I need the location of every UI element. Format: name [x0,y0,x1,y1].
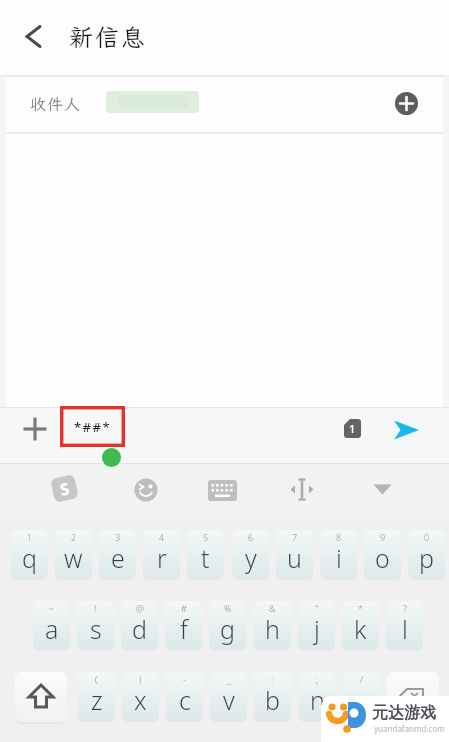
staticText: p [419,541,434,575]
button[interactable] [208,480,237,502]
staticText: 1 [349,421,356,436]
staticText: 1 [27,531,33,543]
staticText: 2 [71,531,77,543]
staticText: 新信息 [69,21,147,53]
button[interactable] [370,482,395,498]
staticText: : [271,673,274,685]
staticText: ) [139,673,142,685]
staticText: @ [136,602,144,614]
staticText: 8 [336,531,342,543]
staticText: * [358,602,363,614]
staticText: k [354,612,367,646]
staticText: 收件人 [30,93,82,114]
staticText: z [91,683,103,717]
staticText: ( [95,673,98,685]
staticText: 元达游戏 [372,703,436,723]
staticText: & [269,602,276,614]
button[interactable]: / [343,672,380,720]
button[interactable]: * [342,601,379,649]
button[interactable] [132,476,160,504]
button[interactable]: 6 [232,530,269,578]
staticText: o [375,541,390,575]
button[interactable]: 2 [55,530,92,578]
staticText: b [265,683,280,717]
staticText: r [157,541,167,575]
staticText: 4 [159,531,165,543]
button[interactable]: 3 [99,530,136,578]
staticText: *##* [74,418,112,436]
button[interactable]: - [166,672,203,720]
button[interactable] [18,18,54,56]
staticText: v [223,683,235,717]
button[interactable] [15,672,67,722]
button[interactable]: 1 [11,530,48,578]
button[interactable] [0,76,449,132]
button[interactable]: @ [121,601,158,649]
staticText: S [58,477,71,501]
button[interactable]: 5 [187,530,224,578]
staticText: ~ [49,602,55,614]
button[interactable]: : [254,672,291,720]
staticText: y [245,541,257,575]
button[interactable] [288,477,316,503]
staticText: i [336,541,342,575]
staticText: q [22,541,37,575]
staticText: u [287,541,302,575]
staticText: ? [403,602,407,614]
staticText: s [90,612,102,646]
staticText: w [64,541,83,575]
staticText: 7 [292,531,298,543]
staticText: x [134,683,147,717]
staticText: - [183,673,186,685]
staticText: l [402,612,408,646]
staticText: c [179,683,191,717]
staticText: 9 [380,531,386,543]
button[interactable]: 1 [344,419,361,438]
button[interactable]: ) [122,672,159,720]
button[interactable]: 4 [143,530,180,578]
button[interactable] [20,414,50,444]
staticText: d [132,612,147,646]
button[interactable] [395,92,418,115]
staticText: # [181,602,187,614]
staticText: e [111,541,125,575]
button[interactable]: 9 [364,530,401,578]
staticText: m [350,683,373,717]
staticText: 6 [248,531,254,543]
button[interactable]: " [298,601,335,649]
button[interactable]: 0 [408,530,445,578]
button[interactable]: ! [77,601,114,649]
staticText: g [220,612,235,646]
button[interactable]: ? [386,601,423,649]
staticText: j [314,612,320,646]
button[interactable]: % [209,601,246,649]
staticText: 5 [203,531,209,543]
staticText: yuandafanmd.com [374,723,445,734]
staticText: t [201,541,210,575]
staticText: _ [227,673,231,685]
staticText: " [315,602,319,614]
staticText: ! [94,602,97,614]
button[interactable]: S [48,472,80,504]
button[interactable]: & [254,601,291,649]
staticText: a [45,612,59,646]
staticText: ; [316,673,319,685]
staticText: h [265,612,280,646]
staticText: % [224,602,232,614]
button[interactable] [387,672,439,722]
button[interactable]: ; [299,672,336,720]
staticText: 0 [424,531,430,543]
button[interactable]: ( [78,672,115,720]
staticText: 3 [115,531,121,543]
staticText: / [360,673,364,685]
staticText: f [180,612,188,646]
button[interactable]: 7 [276,530,313,578]
button[interactable]: 8 [320,530,357,578]
button[interactable]: # [165,601,202,649]
button[interactable]: ~ [33,601,70,649]
button[interactable]: *##* [60,406,125,447]
staticText: n [310,683,325,717]
button[interactable] [392,418,422,444]
button[interactable]: _ [210,672,247,720]
